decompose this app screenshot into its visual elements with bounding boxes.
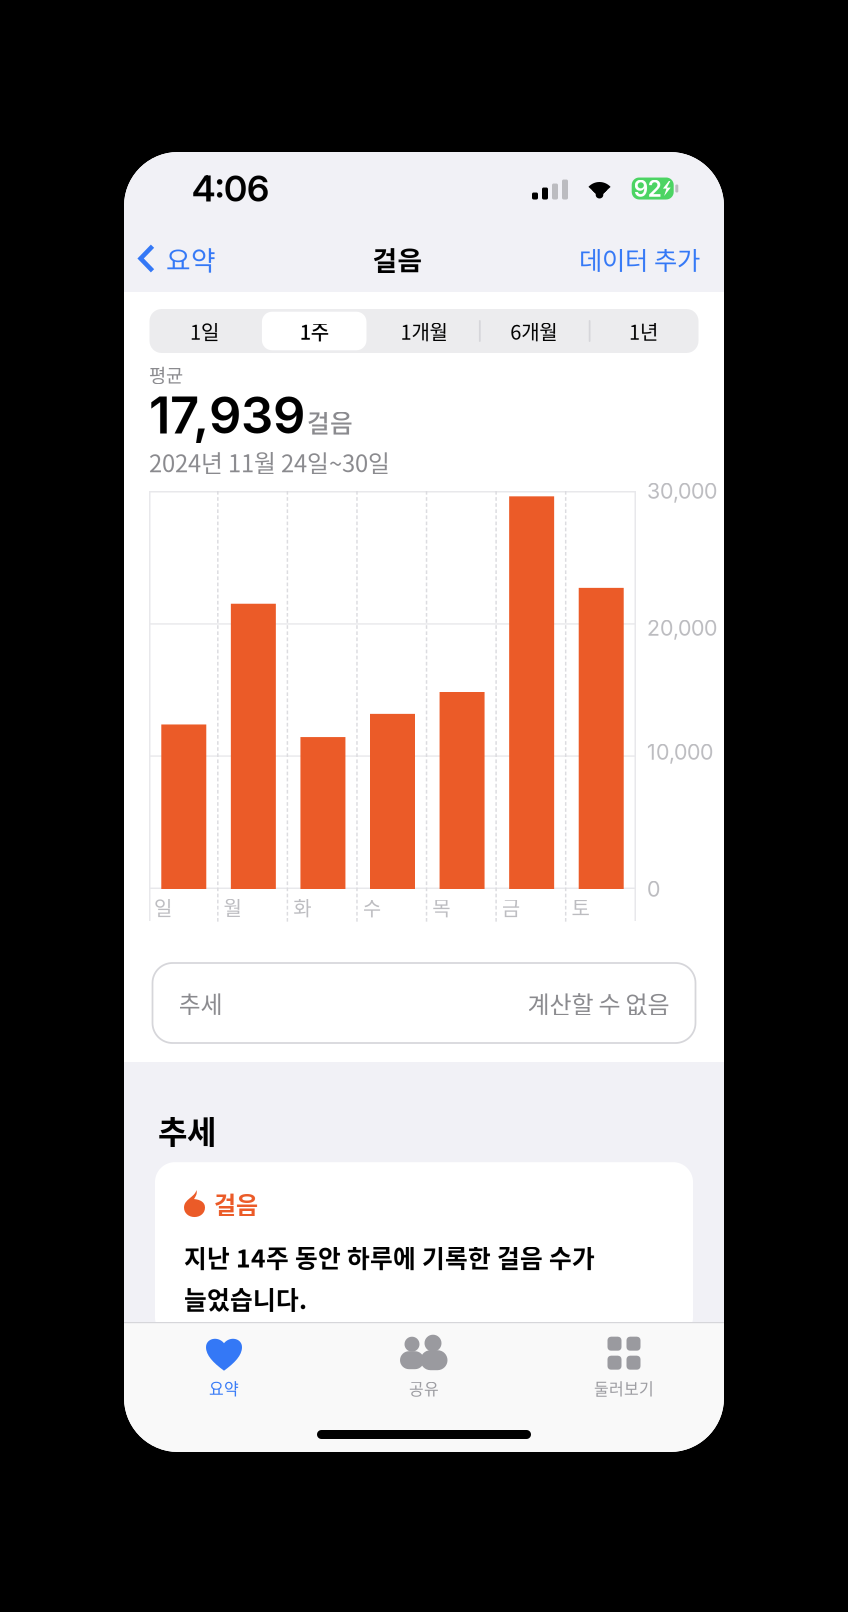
button[interactable]: 1년 — [589, 309, 698, 353]
button[interactable]: 1주 — [259, 309, 369, 353]
button[interactable]: 요약 — [138, 231, 216, 286]
staticText: 요약 — [209, 1376, 239, 1399]
staticText: 6개월 — [510, 316, 557, 345]
staticText: 수 — [363, 892, 381, 921]
button[interactable]: 요약 — [124, 1323, 324, 1414]
staticText: 1개월 — [400, 316, 447, 345]
staticText: 92 — [634, 175, 662, 202]
staticText: 일 — [154, 892, 172, 921]
staticText: 월 — [224, 892, 242, 921]
staticText: 데이터 추가 — [579, 240, 700, 277]
button[interactable]: 데이터 추가 — [579, 232, 700, 285]
staticText: 1년 — [629, 316, 658, 345]
staticText: 요약 — [166, 239, 216, 278]
button[interactable]: 1일 — [149, 309, 259, 353]
staticText: 추세 — [178, 986, 222, 1020]
button[interactable]: 1개월 — [369, 309, 479, 353]
button[interactable]: 걸음 — [155, 1162, 693, 1337]
staticText: 2024년 11월 24일~30일 — [149, 445, 390, 479]
staticText: 공유 — [409, 1376, 439, 1399]
staticText: 0 — [647, 876, 660, 902]
staticText: 20,000 — [647, 615, 717, 641]
staticText: 토 — [571, 892, 589, 921]
button[interactable]: 추세 — [152, 963, 695, 1043]
staticText: 추세 — [158, 1107, 216, 1153]
staticText: 목 — [432, 892, 450, 921]
button[interactable]: 6개월 — [479, 309, 589, 353]
button[interactable]: 공유 — [324, 1323, 524, 1414]
staticText: 걸음 — [307, 404, 353, 440]
staticText: 화 — [293, 892, 311, 921]
staticText: 1주 — [300, 316, 329, 345]
staticText: 4:06 — [192, 167, 269, 210]
staticText: 걸음 — [214, 1186, 258, 1221]
staticText: 30,000 — [647, 478, 717, 504]
staticText: 지난 14주 동안 하루에 기록한 걸음 수가 — [184, 1239, 595, 1275]
staticText: 걸음 — [372, 239, 422, 278]
button[interactable]: 둘러보기 — [524, 1323, 724, 1414]
staticText: 평균 — [149, 360, 183, 387]
staticText: 1일 — [190, 316, 219, 345]
staticText: 17,939 — [149, 384, 305, 446]
staticText: 금 — [502, 892, 520, 921]
staticText: 10,000 — [647, 739, 713, 765]
staticText: 계산할 수 없음 — [527, 986, 669, 1020]
staticText: 둘러보기 — [594, 1376, 654, 1399]
staticText: 늘었습니다. — [184, 1281, 307, 1316]
